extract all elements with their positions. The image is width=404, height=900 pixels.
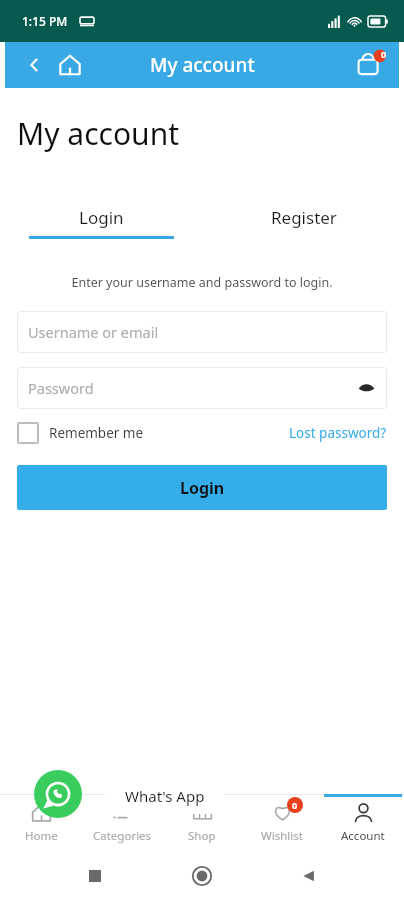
button[interactable]: Show password — [355, 377, 377, 399]
button[interactable]: 0 — [243, 794, 321, 852]
button[interactable]: Register — [202, 206, 404, 239]
button[interactable]: Password — [17, 367, 387, 409]
button[interactable]: Home — [53, 48, 87, 82]
staticText: Categories — [93, 828, 152, 844]
staticText: 0 — [381, 48, 387, 60]
staticText: 1:15 PM — [22, 13, 68, 29]
button[interactable]: Remember me — [17, 422, 144, 444]
staticText: Enter your username and password to logi… — [0, 274, 404, 291]
staticText: 0 — [292, 799, 298, 811]
button[interactable]: Shop — [163, 794, 241, 852]
button[interactable]: Account — [324, 794, 402, 852]
staticText: Register — [271, 206, 337, 229]
button[interactable]: Recents — [80, 861, 110, 891]
staticText: Username or email — [28, 322, 159, 342]
staticText: Login — [79, 206, 124, 229]
staticText: Shop — [188, 828, 216, 844]
button[interactable]: What's App — [105, 777, 224, 814]
button[interactable]: Categories — [83, 794, 161, 852]
staticText: What's App — [125, 786, 205, 806]
staticText: Account — [341, 828, 385, 844]
button[interactable]: Home — [2, 794, 80, 852]
staticText: Login — [180, 477, 225, 499]
button[interactable]: What's App — [34, 770, 82, 818]
button[interactable]: Home — [187, 861, 217, 891]
button[interactable]: Cart — [351, 46, 389, 84]
button[interactable]: Back — [19, 50, 49, 80]
button[interactable]: Login — [0, 206, 202, 239]
staticText: My account — [17, 113, 179, 154]
button[interactable]: Back — [294, 861, 324, 891]
staticText: Lost password? — [289, 424, 387, 442]
staticText: Password — [28, 378, 94, 398]
staticText: Home — [25, 828, 58, 844]
button[interactable]: Lost password? — [289, 424, 387, 442]
staticText: My account — [150, 52, 255, 78]
button[interactable]: Login — [17, 465, 387, 510]
button[interactable]: Username or email — [17, 311, 387, 353]
staticText: Wishlist — [261, 828, 303, 844]
staticText: Remember me — [49, 424, 144, 442]
